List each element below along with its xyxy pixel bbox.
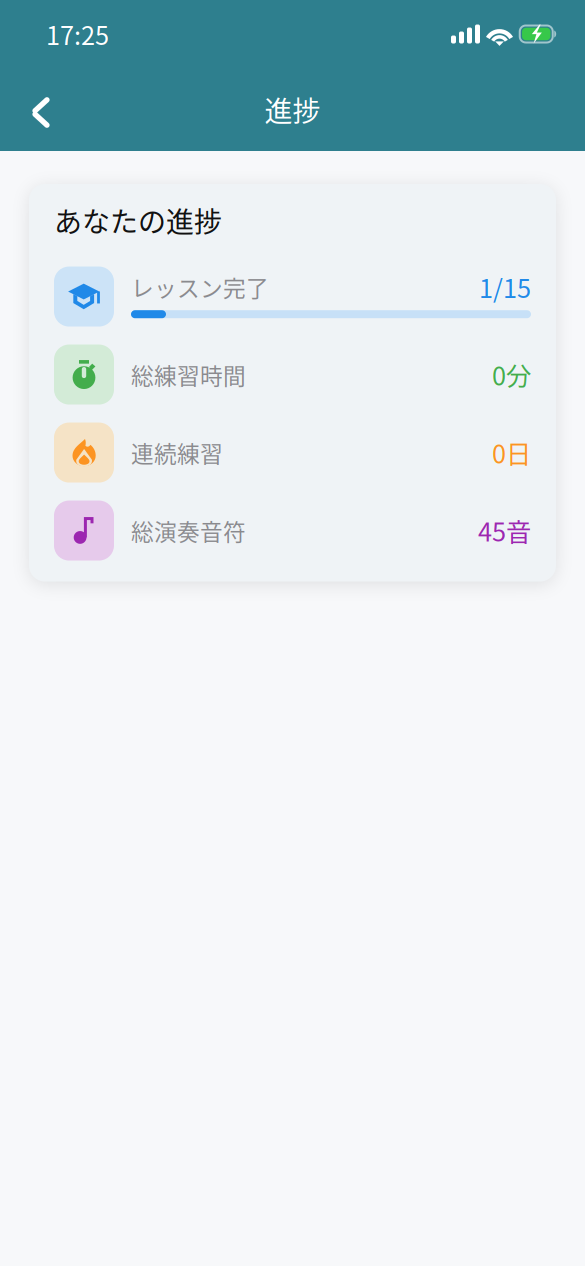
- staticText: 進捗: [264, 89, 320, 130]
- staticText: レッスン完了: [131, 270, 269, 303]
- staticText: 総演奏音符: [131, 514, 246, 547]
- staticText: 0分: [492, 356, 531, 393]
- staticText: 0日: [492, 434, 531, 471]
- staticText: 連続練習: [131, 436, 223, 469]
- staticText: あなたの進捗: [54, 200, 222, 240]
- staticText: 総練習時間: [131, 358, 246, 391]
- button[interactable]: Back: [18, 84, 64, 134]
- staticText: 1/15: [479, 268, 531, 305]
- staticText: 17:25: [46, 16, 109, 52]
- staticText: 45音: [478, 512, 531, 549]
